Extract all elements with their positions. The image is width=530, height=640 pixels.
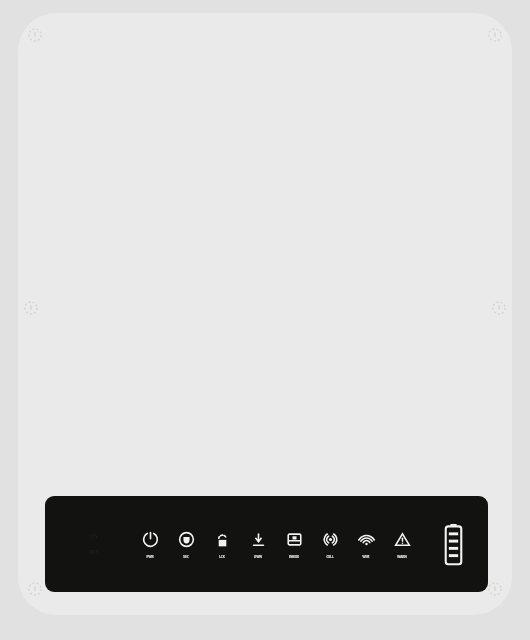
staticText: SEC <box>169 555 203 559</box>
staticText: RDY <box>89 549 99 556</box>
staticText: CELL <box>313 555 347 559</box>
button[interactable]: Lock <box>205 528 239 561</box>
staticText: WARN <box>385 555 419 559</box>
button[interactable]: Power <box>133 528 167 561</box>
staticText: LCK <box>205 555 239 559</box>
button[interactable]: Battery <box>443 522 478 566</box>
staticText: INBOX <box>277 555 311 559</box>
button[interactable]: Security <box>169 528 203 561</box>
button[interactable]: Cellular <box>313 528 347 561</box>
staticText: DWN <box>241 555 275 559</box>
staticText: PWR <box>133 555 167 559</box>
button[interactable]: Warning <box>385 528 419 561</box>
button[interactable]: Wi-Fi <box>349 528 383 561</box>
staticText: SYS <box>89 533 98 540</box>
button[interactable]: Inbox <box>277 528 311 561</box>
staticText: WIFI <box>349 555 383 559</box>
button[interactable]: Download <box>241 528 275 561</box>
